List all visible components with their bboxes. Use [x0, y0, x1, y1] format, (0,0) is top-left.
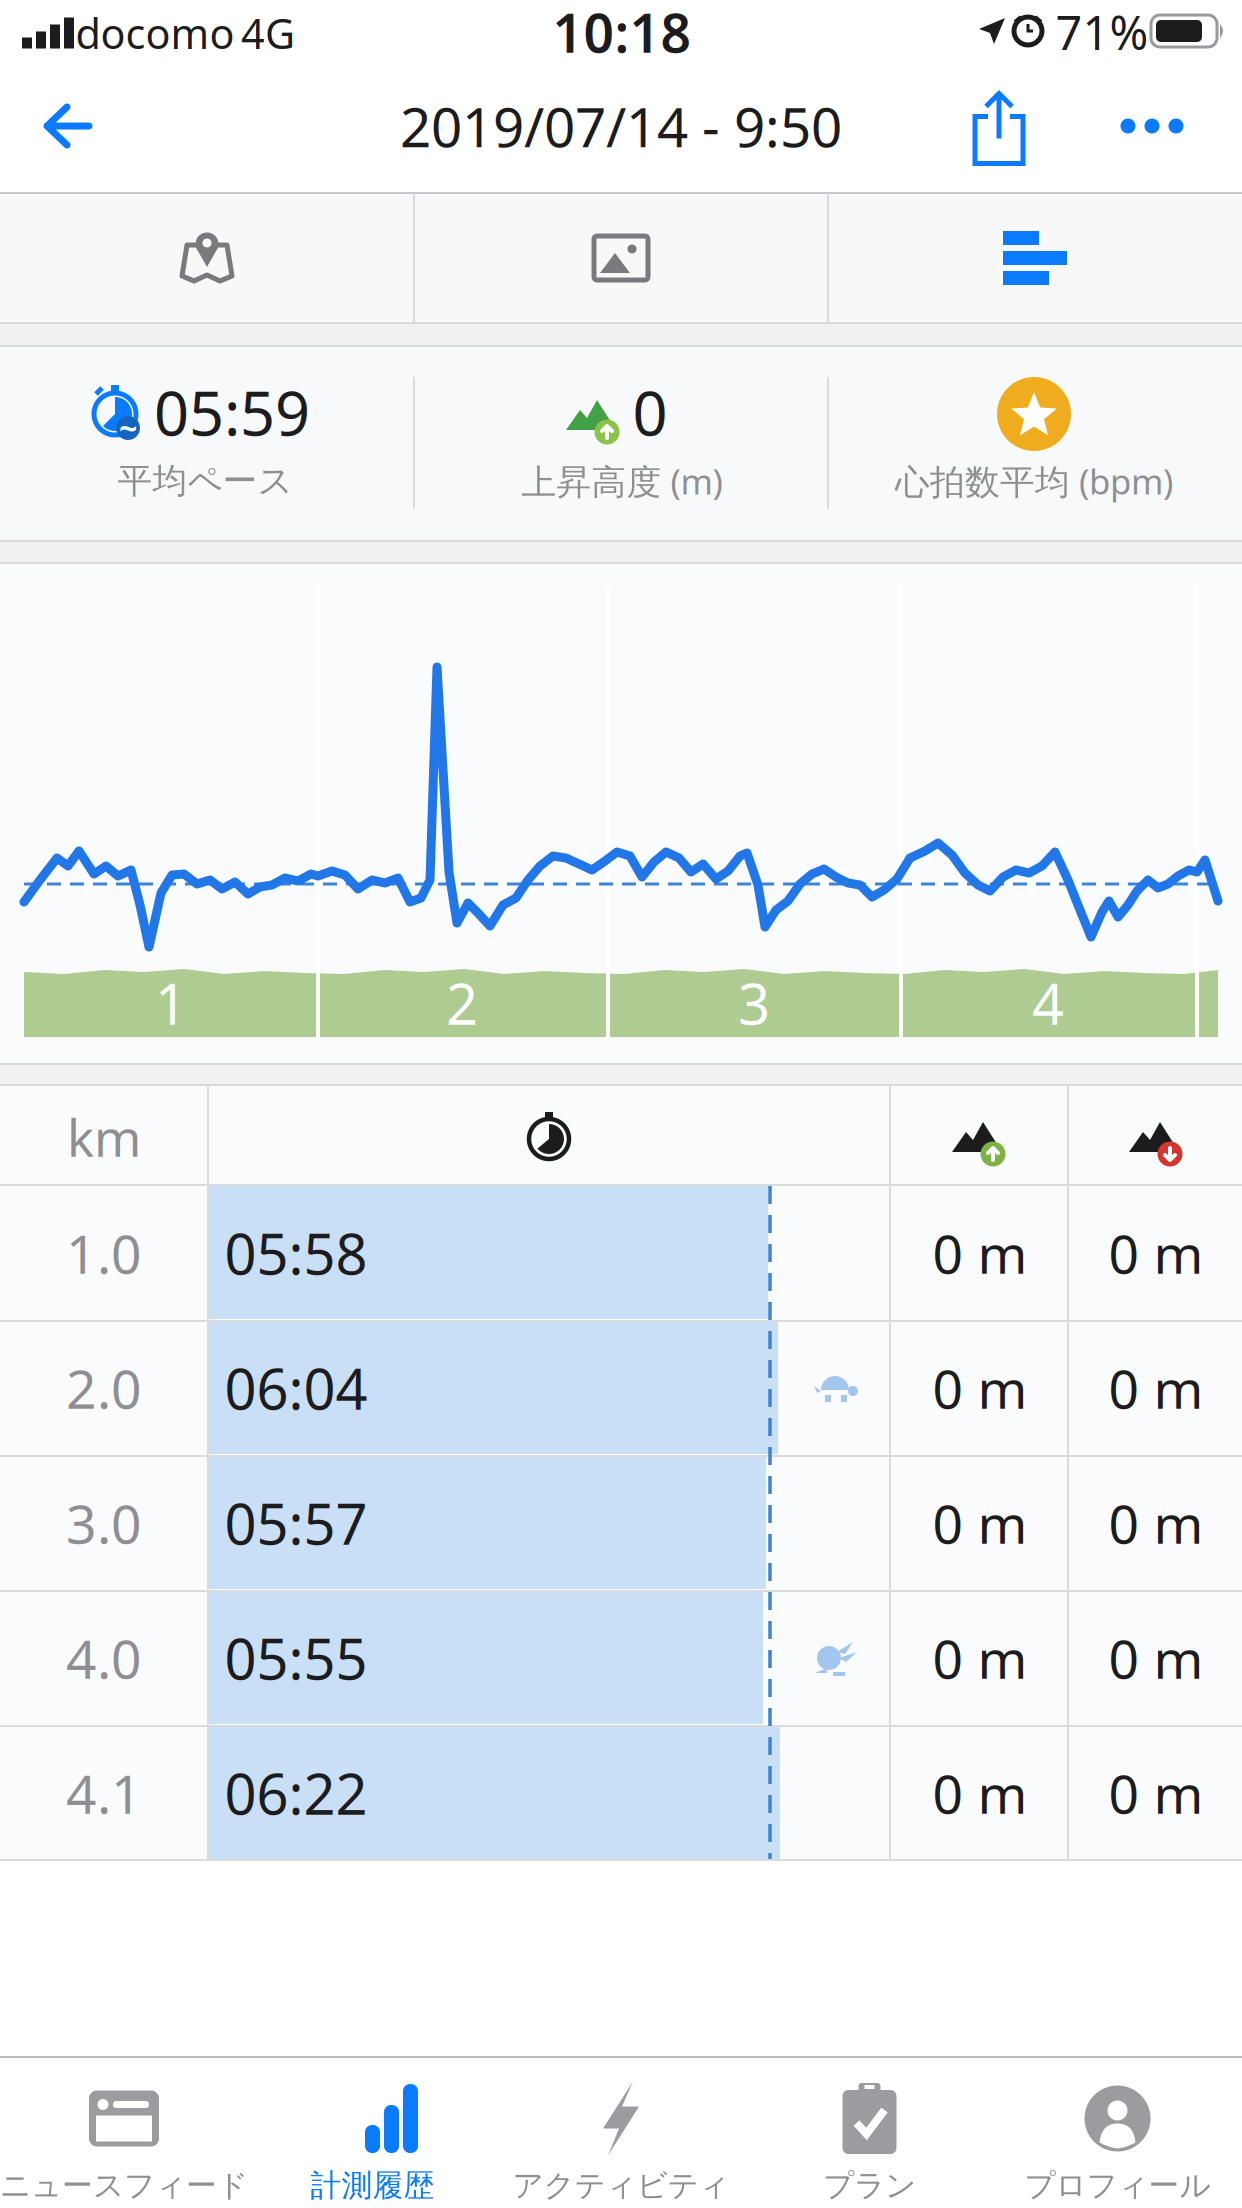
- staticText: ニュースフィード: [0, 2167, 248, 2204]
- staticText: プラン: [823, 2167, 916, 2204]
- staticText: 06:22: [224, 1756, 367, 1830]
- staticText: 06:04: [224, 1351, 367, 1425]
- staticText: 0 m: [1108, 1353, 1203, 1423]
- staticText: 0 m: [1108, 1758, 1203, 1828]
- button[interactable]: ニュースフィード: [0, 2056, 248, 2207]
- staticText: 4G: [241, 6, 295, 60]
- staticText: 0 m: [932, 1353, 1027, 1423]
- staticText: 4: [1032, 966, 1064, 1040]
- staticText: docomo: [75, 6, 234, 60]
- staticText: 71%: [1055, 1, 1148, 63]
- button[interactable]: プロフィール: [993, 2056, 1241, 2207]
- button[interactable]: Splits: [828, 193, 1241, 323]
- staticText: 心拍数平均 (bpm): [895, 458, 1173, 504]
- staticText: 0 m: [932, 1623, 1027, 1693]
- staticText: 2: [446, 966, 478, 1040]
- staticText: 0 m: [1108, 1623, 1203, 1693]
- staticText: 0 m: [932, 1218, 1027, 1288]
- staticText: 2019/07/14 - 9:50: [400, 90, 842, 162]
- button[interactable]: Share: [954, 83, 1044, 173]
- button[interactable]: プラン: [745, 2056, 993, 2207]
- staticText: 0 m: [1108, 1488, 1203, 1558]
- button[interactable]: アクティビティ: [497, 2056, 745, 2207]
- staticText: 平均ペース: [117, 460, 292, 502]
- staticText: 05:58: [224, 1216, 367, 1290]
- button[interactable]: Map: [0, 193, 413, 323]
- staticText: 上昇高度 (m): [521, 458, 722, 504]
- staticText: 1: [155, 966, 187, 1040]
- button[interactable]: Back: [23, 81, 113, 171]
- staticText: 3.0: [66, 1488, 142, 1558]
- staticText: 05:59: [154, 371, 310, 453]
- staticText: 05:57: [224, 1486, 367, 1560]
- staticText: アクティビティ: [512, 2167, 729, 2204]
- staticText: 0: [632, 371, 667, 453]
- staticText: 計測履歴: [310, 2167, 434, 2204]
- staticText: 0 m: [932, 1488, 1027, 1558]
- button[interactable]: 計測履歴: [248, 2056, 496, 2207]
- button[interactable]: More: [1107, 96, 1197, 156]
- staticText: プロフィール: [1024, 2167, 1210, 2204]
- button[interactable]: Photos: [414, 193, 827, 323]
- staticText: 4.0: [66, 1623, 142, 1693]
- staticText: 2.0: [66, 1353, 142, 1423]
- staticText: 0 m: [932, 1758, 1027, 1828]
- staticText: ~: [119, 407, 137, 449]
- staticText: 3: [738, 966, 770, 1040]
- staticText: 4.1: [66, 1758, 142, 1828]
- staticText: 10:18: [552, 0, 691, 67]
- staticText: 0 m: [1108, 1218, 1203, 1288]
- staticText: 05:55: [224, 1621, 367, 1695]
- staticText: 1.0: [66, 1218, 142, 1288]
- staticText: km: [67, 1103, 141, 1171]
